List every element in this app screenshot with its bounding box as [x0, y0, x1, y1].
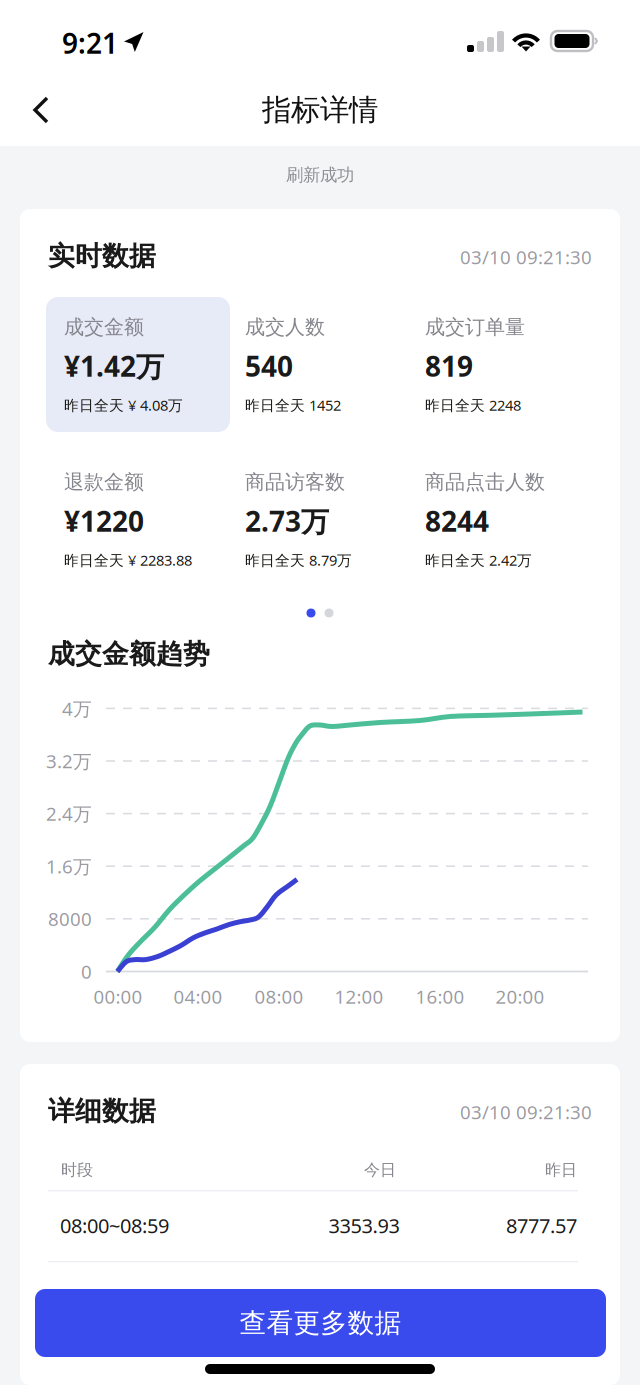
- button[interactable]: 返回: [0, 0, 80, 58]
- staticText: 8244: [425, 502, 489, 540]
- staticText: 04:00: [173, 984, 222, 1009]
- staticText: 2528.64: [506, 1283, 577, 1310]
- staticText: 08:00: [254, 984, 303, 1009]
- staticText: 06:00~06:59: [60, 1283, 169, 1310]
- staticText: 16:00: [415, 984, 464, 1009]
- staticText: 刷新成功: [286, 164, 354, 186]
- staticText: 指标详情: [262, 92, 378, 128]
- staticText: 700.00: [334, 1283, 394, 1310]
- staticText: 昨日全天 8.79万: [245, 550, 352, 570]
- staticText: 成交金额: [64, 315, 144, 339]
- staticText: 00:00: [93, 984, 142, 1009]
- staticText: 商品访客数: [245, 470, 345, 494]
- staticText: 819: [425, 347, 473, 385]
- staticText: 今日: [364, 1160, 396, 1180]
- staticText: 8777.57: [506, 1212, 577, 1239]
- staticText: 03/10 09:21:30: [460, 1100, 592, 1124]
- staticText: 成交金额趋势: [48, 638, 210, 670]
- staticText: 成交人数: [245, 315, 325, 339]
- staticText: 3353.93: [328, 1212, 399, 1239]
- staticText: 查看更多数据: [239, 1307, 401, 1339]
- staticText: 9:21: [62, 24, 118, 62]
- staticText: 时段: [61, 1160, 93, 1180]
- staticText: 成交订单量: [425, 315, 525, 339]
- staticText: 退款金额: [64, 470, 144, 494]
- staticText: 20:00: [495, 984, 544, 1009]
- staticText: 12:00: [334, 984, 383, 1009]
- staticText: 昨日全天 1452: [245, 395, 341, 415]
- staticText: 2.73万: [245, 502, 329, 540]
- staticText: 商品点击人数: [425, 470, 545, 494]
- staticText: 4万: [62, 696, 92, 721]
- staticText: 实时数据: [48, 240, 156, 272]
- staticText: 03/10 09:21:30: [460, 245, 592, 269]
- staticText: 昨日: [545, 1160, 577, 1180]
- staticText: ¥1.42万: [64, 347, 164, 385]
- staticText: 3.2万: [46, 749, 92, 773]
- staticText: 昨日全天 2248: [425, 395, 521, 415]
- staticText: 2.4万: [46, 801, 92, 826]
- staticText: 0: [81, 959, 92, 984]
- staticText: 昨日全天 2.42万: [425, 550, 532, 570]
- staticText: 详细数据: [48, 1095, 156, 1127]
- staticText: 昨日全天 ¥ 2283.88: [64, 550, 192, 570]
- staticText: 08:00~08:59: [60, 1212, 169, 1239]
- staticText: 1.6万: [46, 854, 92, 879]
- staticText: 540: [245, 347, 293, 385]
- staticText: 8000: [48, 906, 92, 931]
- button[interactable]: 查看更多数据: [35, 1289, 606, 1357]
- staticText: 昨日全天 ¥ 4.08万: [64, 395, 183, 415]
- staticText: ¥1220: [64, 502, 144, 540]
